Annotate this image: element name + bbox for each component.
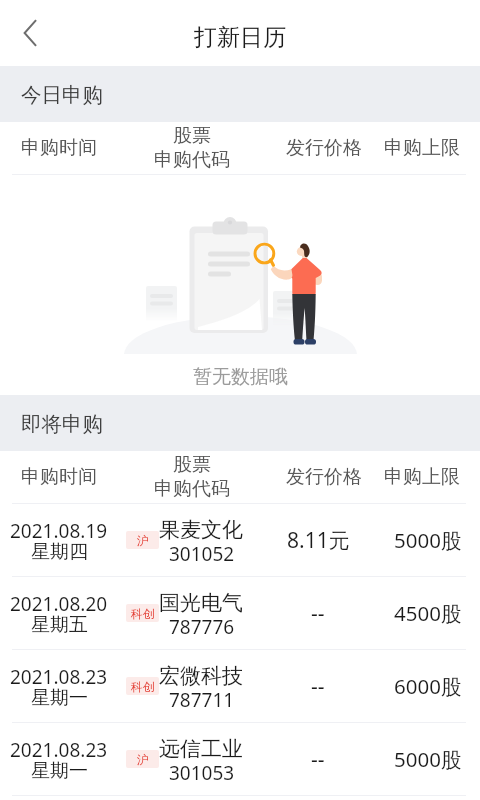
staticText: 申购上限 <box>384 136 460 160</box>
staticText: 2021.08.20 <box>10 591 108 617</box>
staticText: 星期四 <box>31 540 88 564</box>
staticText: 沪 <box>137 533 149 548</box>
staticText: 301053 <box>169 760 235 786</box>
staticText: 星期一 <box>31 686 88 710</box>
staticText: 301052 <box>169 541 235 567</box>
button[interactable]: Back <box>6 9 54 57</box>
staticText: 2021.08.19 <box>10 518 108 544</box>
staticText: 果麦文化 <box>159 517 243 543</box>
staticText: 星期五 <box>31 613 88 637</box>
staticText: 申购代码 <box>154 477 230 501</box>
staticText: -- <box>311 745 325 774</box>
staticText: 5000股 <box>394 526 462 554</box>
staticText: 2021.08.23 <box>10 664 108 690</box>
staticText: 787776 <box>169 614 235 640</box>
staticText: 8.11元 <box>287 526 350 555</box>
staticText: 申购时间 <box>21 465 97 489</box>
staticText: 科创 <box>131 679 155 694</box>
staticText: 即将申购 <box>21 411 103 437</box>
staticText: 2021.08.23 <box>10 737 108 763</box>
staticText: 6000股 <box>394 672 462 700</box>
staticText: 暂无数据哦 <box>193 365 288 389</box>
staticText: 申购代码 <box>154 148 230 172</box>
staticText: 股票 <box>173 124 211 148</box>
staticText: 星期一 <box>31 759 88 783</box>
staticText: 科创 <box>131 606 155 621</box>
staticText: 国光电气 <box>159 590 243 616</box>
staticText: 沪 <box>137 752 149 767</box>
staticText: 远信工业 <box>159 736 243 762</box>
staticText: 申购时间 <box>21 136 97 160</box>
staticText: -- <box>311 672 325 701</box>
staticText: 今日申购 <box>21 82 103 108</box>
button[interactable]: 2021.08.23 <box>0 650 480 723</box>
button[interactable]: 2021.08.19 <box>0 504 480 577</box>
staticText: 打新日历 <box>194 23 286 52</box>
staticText: 发行价格 <box>286 465 362 489</box>
staticText: -- <box>311 599 325 628</box>
staticText: 股票 <box>173 453 211 477</box>
staticText: 宏微科技 <box>159 663 243 689</box>
button[interactable]: 2021.08.20 <box>0 577 480 650</box>
button[interactable]: 2021.08.23 <box>0 723 480 796</box>
staticText: 4500股 <box>394 599 462 627</box>
staticText: 申购上限 <box>384 465 460 489</box>
staticText: 5000股 <box>394 745 462 773</box>
staticText: 发行价格 <box>286 136 362 160</box>
staticText: 787711 <box>169 687 235 713</box>
